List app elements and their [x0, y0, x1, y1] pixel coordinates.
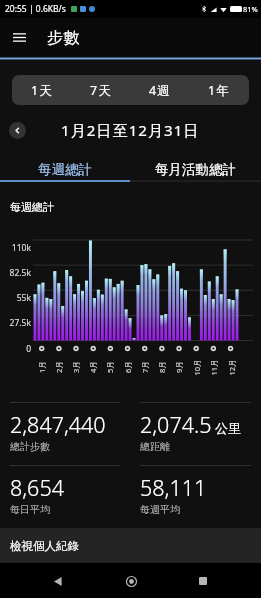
button[interactable]: 4週	[131, 75, 190, 105]
staticText: 4月	[88, 361, 98, 373]
staticText: 每週總計	[10, 200, 54, 214]
staticText: 12月	[226, 358, 236, 375]
staticText: 0	[26, 343, 31, 355]
button[interactable]: 每月活動總計	[130, 158, 261, 180]
staticText: 81%	[243, 4, 258, 14]
staticText: 11月	[208, 358, 218, 375]
staticText: 2,847,440	[10, 410, 106, 439]
staticText: 27.5k	[9, 317, 31, 329]
staticText: 檢視個人紀錄	[10, 539, 79, 553]
button[interactable]: Back	[43, 566, 73, 596]
staticText: 每週平均	[140, 503, 180, 516]
staticText: 4週	[149, 82, 172, 99]
staticText: 2,074.5	[140, 410, 212, 439]
button[interactable]: Recent apps	[188, 566, 218, 596]
staticText: 7月	[140, 361, 150, 373]
button[interactable]: Home	[116, 566, 146, 596]
staticText: 7天	[90, 82, 113, 99]
staticText: 1月2日至12月31日	[61, 120, 200, 140]
staticText: 55k	[16, 292, 31, 304]
staticText: 步數	[47, 28, 81, 48]
staticText: 8月	[157, 361, 167, 373]
staticText: 9月	[174, 361, 184, 373]
button[interactable]: Menu	[0, 18, 39, 57]
button[interactable]: Previous period	[9, 122, 26, 139]
staticText: 總計步數	[10, 440, 50, 453]
staticText: 總距離	[140, 440, 170, 453]
staticText: 58,111	[140, 473, 207, 502]
staticText: 1月	[37, 361, 47, 373]
staticText: 3月	[71, 361, 81, 373]
staticText: 每週總計	[38, 161, 92, 178]
staticText: 82.5k	[9, 267, 31, 279]
staticText: 6月	[123, 361, 133, 373]
staticText: 1天	[31, 82, 54, 99]
button[interactable]: 1天	[12, 75, 72, 105]
staticText: 10月	[191, 358, 201, 375]
button[interactable]: 1年	[190, 75, 249, 105]
staticText: 110k	[11, 242, 31, 254]
button[interactable]: 每週總計	[0, 158, 130, 180]
staticText: 8,654	[10, 473, 64, 502]
staticText: 20:55 | 0.6KB/s	[5, 3, 66, 15]
button[interactable]: 7天	[72, 75, 131, 105]
staticText: 5月	[105, 361, 115, 373]
staticText: 2月	[54, 361, 64, 373]
staticText: 1年	[208, 82, 231, 99]
staticText: 每月活動總計	[155, 161, 236, 178]
staticText: 每日平均	[10, 503, 50, 516]
button[interactable]: 檢視個人紀錄	[0, 528, 261, 563]
staticText: 公里	[215, 420, 241, 436]
